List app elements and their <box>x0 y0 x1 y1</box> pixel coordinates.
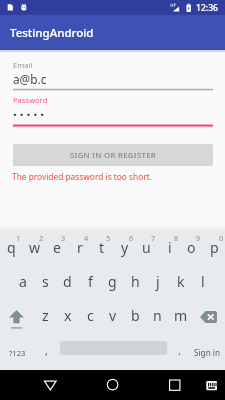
staticText: l <box>201 272 205 291</box>
staticText: x <box>64 306 72 325</box>
staticText: c <box>87 306 94 325</box>
button[interactable]: q <box>0 231 23 266</box>
button[interactable]: y <box>113 231 136 266</box>
button[interactable]: g <box>101 266 124 301</box>
staticText: Password <box>13 95 48 105</box>
button[interactable]: . <box>168 335 190 370</box>
staticText: k <box>177 272 185 291</box>
staticText: 9 <box>196 233 201 243</box>
button[interactable]: d <box>56 266 79 301</box>
staticText: r <box>77 238 83 257</box>
staticText: The provided password is too short. <box>12 171 152 182</box>
staticText: y <box>121 238 129 257</box>
button[interactable]: f <box>79 266 102 301</box>
staticText: q <box>7 238 16 257</box>
staticText: h <box>131 272 140 291</box>
button[interactable]: v <box>101 300 124 335</box>
staticText: u <box>142 238 151 257</box>
button[interactable]: Shift <box>0 300 34 335</box>
staticText: TestingAndroid <box>10 25 94 41</box>
staticText: Email <box>13 60 33 70</box>
staticText: t <box>99 238 105 257</box>
button[interactable]: z <box>34 300 57 335</box>
button[interactable]: k <box>169 266 192 301</box>
staticText: f <box>88 272 93 291</box>
button[interactable]: h <box>124 266 147 301</box>
button[interactable]: n <box>146 300 169 335</box>
staticText: d <box>63 272 72 291</box>
button[interactable]: , <box>35 335 57 370</box>
staticText: SIGN IN OR REGISTER <box>70 150 157 161</box>
staticText: m <box>174 306 188 325</box>
staticText: s <box>42 272 49 291</box>
staticText: e <box>53 238 61 257</box>
button[interactable]: s <box>34 266 57 301</box>
button[interactable]: c <box>79 300 102 335</box>
button[interactable]: i <box>158 231 181 266</box>
staticText: 0 <box>219 233 224 243</box>
staticText: n <box>153 306 162 325</box>
button[interactable]: SIGN IN OR REGISTER <box>13 144 213 166</box>
staticText: 7 <box>151 233 156 243</box>
button[interactable]: j <box>146 266 169 301</box>
staticText: i <box>168 238 172 257</box>
staticText: g <box>108 272 117 291</box>
staticText: 3 <box>61 233 66 243</box>
button[interactable]: o <box>180 231 203 266</box>
staticText: ?123 <box>9 348 26 358</box>
staticText: b <box>131 306 140 325</box>
staticText: 4 <box>84 233 89 243</box>
staticText: , <box>45 343 48 358</box>
staticText: p <box>210 238 219 257</box>
staticText: o <box>187 238 196 257</box>
staticText: z <box>42 306 49 325</box>
staticText: 1 <box>16 233 21 243</box>
button[interactable]: ?123 <box>0 335 35 370</box>
button[interactable]: e <box>45 231 68 266</box>
staticText: 2 <box>39 233 44 243</box>
staticText: a <box>19 272 27 291</box>
staticText: 8 <box>174 233 179 243</box>
button[interactable]: m <box>169 300 192 335</box>
button[interactable]: w <box>23 231 46 266</box>
button[interactable]: u <box>135 231 158 266</box>
button[interactable]: p <box>203 231 225 266</box>
staticText: v <box>109 306 117 325</box>
staticText: 5 <box>106 233 111 243</box>
button[interactable]: x <box>56 300 79 335</box>
staticText: . <box>178 343 181 358</box>
button[interactable]: Sign in <box>190 335 225 370</box>
staticText: Sign in <box>194 347 221 358</box>
button[interactable]: Backspace <box>191 300 225 335</box>
staticText: 6 <box>129 233 134 243</box>
button[interactable]: t <box>90 231 113 266</box>
button[interactable]: a <box>11 266 34 301</box>
button[interactable]: l <box>191 266 214 301</box>
button[interactable]: r <box>68 231 91 266</box>
staticText: 12:36 <box>196 2 219 14</box>
button[interactable]: b <box>124 300 147 335</box>
staticText: w <box>29 238 41 257</box>
staticText: a@b.c <box>13 71 47 87</box>
staticText: j <box>156 272 160 291</box>
